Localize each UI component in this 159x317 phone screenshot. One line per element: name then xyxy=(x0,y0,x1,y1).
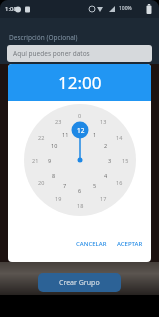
staticText: 10 xyxy=(51,142,58,149)
staticText: 0 xyxy=(78,112,82,119)
staticText: 1:08 xyxy=(5,5,17,13)
button[interactable]: Aquí puedes poner datos xyxy=(7,45,152,62)
staticText: Descripción (Opcional) xyxy=(9,33,78,42)
staticText: 2 xyxy=(104,142,108,149)
staticText: 12 xyxy=(77,126,85,135)
staticText: 22 xyxy=(38,134,45,141)
staticText: 18 xyxy=(77,202,84,209)
staticText: 5 xyxy=(93,182,97,189)
staticText: 9 xyxy=(48,157,52,164)
staticText: 21 xyxy=(32,157,39,164)
staticText: 12:00 xyxy=(58,71,102,94)
staticText: 8 xyxy=(52,172,56,179)
staticText: 17 xyxy=(100,195,107,202)
staticText: 6 xyxy=(78,187,82,194)
staticText: 1 xyxy=(93,131,97,138)
staticText: 4 xyxy=(104,172,108,179)
button[interactable]: 12 xyxy=(72,122,89,139)
staticText: 15 xyxy=(122,157,129,164)
staticText: CANCELAR xyxy=(76,240,107,248)
staticText: 16 xyxy=(116,179,123,186)
staticText: 11 xyxy=(62,131,69,138)
staticText: 23 xyxy=(55,118,62,125)
staticText: 7 xyxy=(63,182,67,189)
staticText: ACEPTAR xyxy=(117,240,143,248)
staticText: 3 xyxy=(108,157,112,164)
staticText: Aquí puedes poner datos xyxy=(13,49,90,58)
button[interactable]: Crear Grupo xyxy=(38,273,121,292)
staticText: 19 xyxy=(55,195,62,202)
button[interactable]: CANCELAR xyxy=(76,240,107,248)
staticText: Crear Grupo xyxy=(59,278,100,288)
staticText: 20 xyxy=(38,179,45,186)
staticText: 100% xyxy=(119,5,132,12)
button[interactable]: ACEPTAR xyxy=(117,240,143,248)
staticText: 14 xyxy=(116,134,123,141)
staticText: 13 xyxy=(100,118,107,125)
